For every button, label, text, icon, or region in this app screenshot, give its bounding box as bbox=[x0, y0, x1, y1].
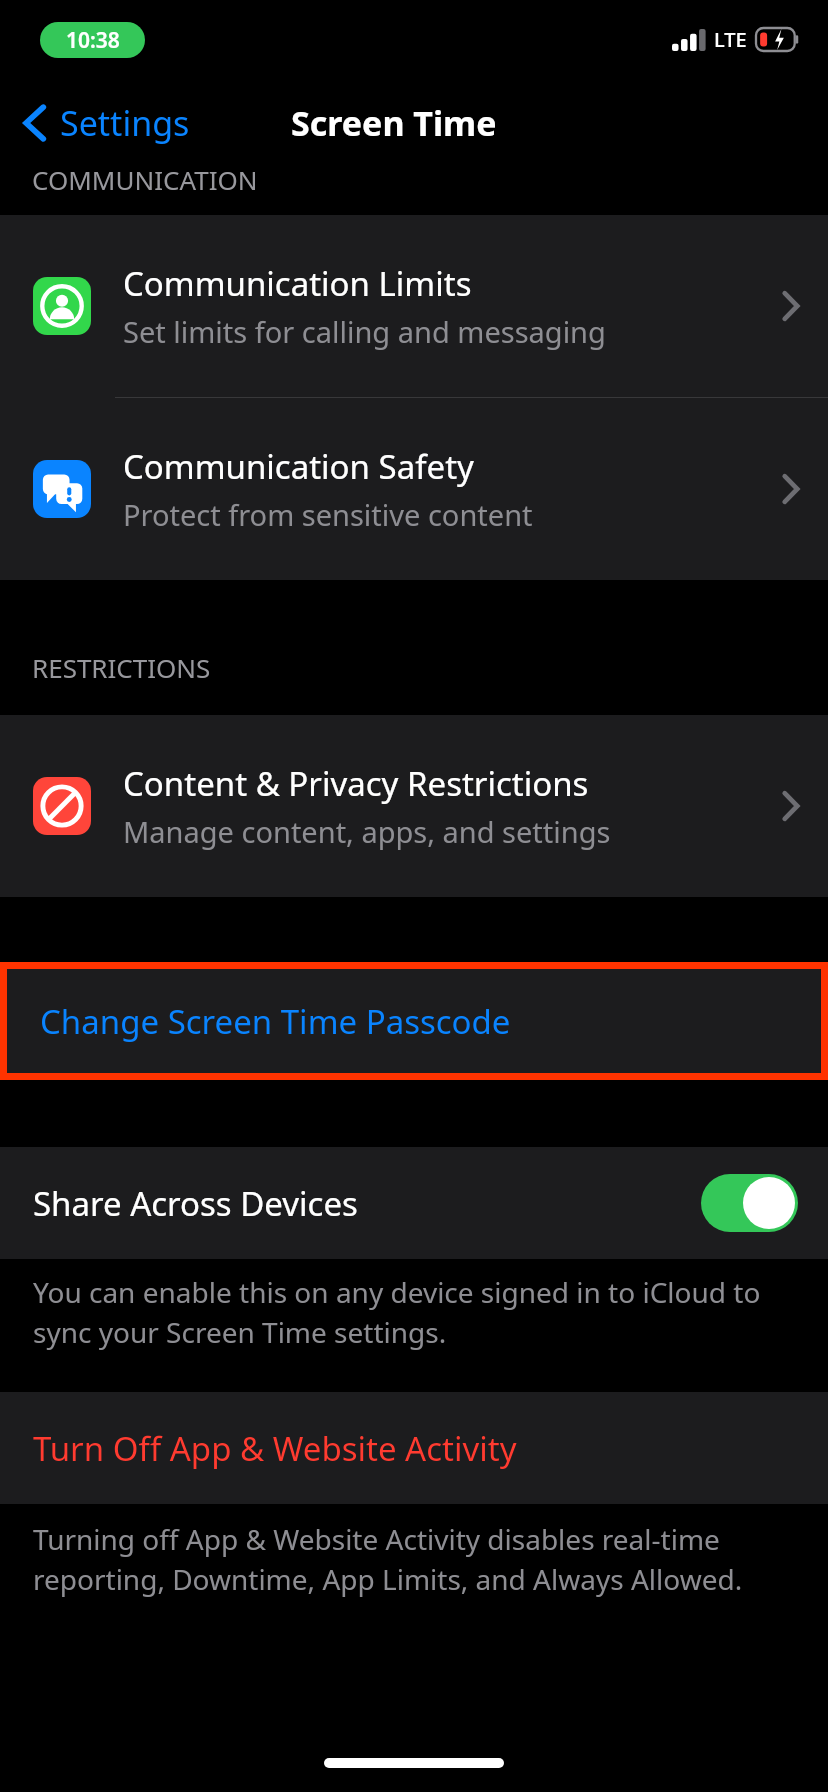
staticText: LTE bbox=[714, 26, 747, 53]
button[interactable]: Communication Safety bbox=[0, 398, 828, 580]
staticText: Settings bbox=[60, 100, 190, 146]
button[interactable]: Content & Privacy Restrictions bbox=[0, 715, 828, 897]
staticText: Set limits for calling and messaging bbox=[123, 312, 606, 351]
staticText: Change Screen Time Passcode bbox=[40, 999, 511, 1044]
staticText: COMMUNICATION bbox=[32, 162, 258, 197]
staticText: RESTRICTIONS bbox=[32, 650, 211, 685]
button[interactable]: Change Screen Time Passcode bbox=[7, 969, 821, 1073]
staticText: Turn Off App & Website Activity bbox=[33, 1426, 517, 1471]
staticText: Communication Safety bbox=[123, 444, 474, 489]
button[interactable]: Communication Limits bbox=[0, 215, 828, 397]
staticText: Screen Time bbox=[291, 100, 497, 146]
staticText: 10:38 bbox=[66, 26, 120, 55]
button[interactable]: Settings bbox=[0, 92, 202, 154]
button[interactable]: Turn Off App & Website Activity bbox=[0, 1392, 828, 1504]
staticText: You can enable this on any device signed… bbox=[33, 1273, 778, 1352]
staticText: Content & Privacy Restrictions bbox=[123, 761, 589, 806]
staticText: Protect from sensitive content bbox=[123, 495, 533, 534]
staticText: Turning off App & Website Activity disab… bbox=[33, 1520, 778, 1599]
staticText: Manage content, apps, and settings bbox=[123, 812, 611, 851]
button[interactable]: Share Across Devices toggle bbox=[701, 1174, 798, 1232]
staticText: Share Across Devices bbox=[33, 1181, 358, 1226]
button[interactable]: Share Across Devices bbox=[0, 1147, 828, 1259]
staticText: Communication Limits bbox=[123, 261, 472, 306]
